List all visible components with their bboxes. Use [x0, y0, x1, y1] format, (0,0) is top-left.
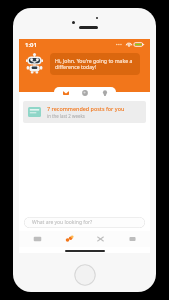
button[interactable]: Hi, John. You're going to make a differe…	[50, 53, 140, 75]
staticText: What are you looking for?	[32, 219, 93, 226]
button[interactable]: What are you looking for?	[24, 217, 145, 228]
button[interactable]: Assistant avatar	[26, 54, 43, 74]
button[interactable]: 7 recommended posts for you	[23, 101, 146, 123]
staticText: Hi, John. You're going to make a differe…	[55, 57, 133, 71]
staticText: 1:01	[25, 41, 37, 49]
button[interactable]: Home	[23, 231, 51, 247]
staticText: 7 recommended posts for you	[47, 105, 125, 112]
button[interactable]: Connections	[55, 231, 83, 247]
button[interactable]: Activity	[86, 231, 114, 247]
button[interactable]: Inbox	[58, 87, 74, 98]
staticText: in the last 2 weeks	[47, 113, 85, 119]
button[interactable]: Awards	[97, 87, 113, 98]
button[interactable]: Explore	[77, 87, 93, 98]
button[interactable]: Profile	[118, 231, 146, 247]
